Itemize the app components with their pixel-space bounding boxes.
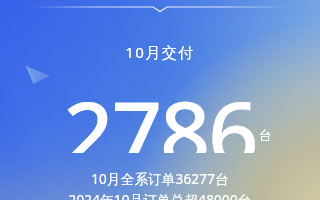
staticText: 2024年10月订单总超48000台 — [68, 191, 252, 200]
button[interactable]: 10月交付 — [90, 42, 230, 61]
button[interactable]: 10月全系订单36277台 — [50, 170, 270, 188]
staticText: 27862 — [45, 71, 275, 153]
staticText: 台 — [259, 127, 272, 143]
staticText: 10月全系订单36277台 — [91, 170, 229, 188]
button[interactable]: 27862 units delivered in October — [45, 71, 275, 153]
staticText: 10月交付 — [125, 42, 195, 61]
